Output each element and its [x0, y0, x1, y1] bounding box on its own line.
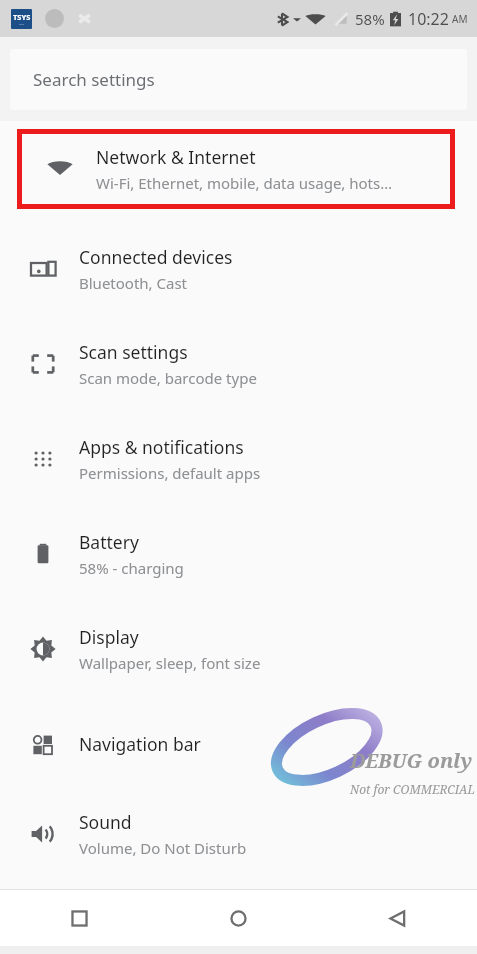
staticText: Connected devices [79, 245, 233, 269]
staticText: Scan mode, barcode type [79, 368, 257, 388]
staticText: Wallpaper, sleep, font size [79, 653, 261, 673]
button[interactable]: Search settings [10, 49, 467, 110]
staticText: Network & Internet [96, 145, 256, 169]
button[interactable]: Battery [0, 506, 477, 601]
button[interactable]: Sound [0, 791, 477, 877]
staticText: Search settings [33, 68, 155, 91]
staticText: Display [79, 625, 139, 649]
button[interactable]: Network & Internet [22, 134, 450, 204]
button[interactable]: Connected devices [0, 221, 477, 316]
staticText: Apps & notifications [79, 435, 244, 459]
staticText: Not for COMMERCIAL [350, 781, 476, 797]
staticText: 58% [355, 9, 385, 29]
staticText: DEBUG only [350, 747, 473, 774]
staticText: AM [452, 12, 468, 26]
staticText: Scan settings [79, 340, 188, 364]
button[interactable]: Back [318, 890, 477, 946]
staticText: Bluetooth, Cast [79, 273, 188, 293]
button[interactable]: Scan settings [0, 316, 477, 411]
button[interactable]: Recents [0, 890, 159, 946]
staticText: Wi-Fi, Ethernet, mobile, data usage, hot… [96, 173, 393, 193]
button[interactable]: Apps & notifications [0, 411, 477, 506]
staticText: Battery [79, 530, 139, 554]
button[interactable]: Home [159, 890, 318, 946]
button[interactable]: Display [0, 601, 477, 696]
staticText: Sound [79, 810, 132, 834]
staticText: ····· [19, 22, 25, 27]
staticText: 58% - charging [79, 558, 184, 578]
staticText: TSYS [13, 12, 31, 22]
button[interactable]: Navigation bar [0, 696, 477, 791]
staticText: 10:22 [408, 8, 449, 30]
staticText: Permissions, default apps [79, 463, 261, 483]
staticText: Volume, Do Not Disturb [79, 838, 247, 858]
staticText: Navigation bar [79, 732, 201, 756]
